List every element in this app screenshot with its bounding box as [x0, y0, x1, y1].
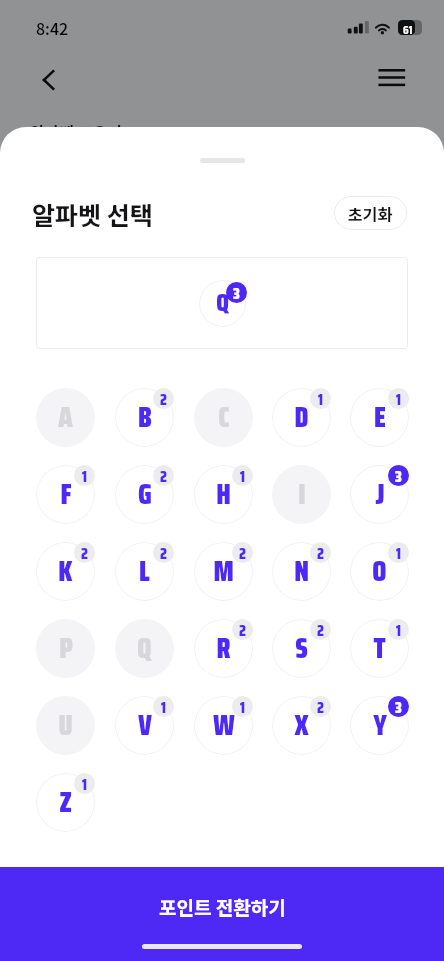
- button[interactable]: Q: [115, 619, 174, 678]
- staticText: 3: [395, 465, 402, 486]
- button[interactable]: C: [194, 388, 253, 447]
- staticText: B: [138, 395, 152, 439]
- other: Wi-Fi: [374, 19, 392, 34]
- staticText: D: [294, 395, 309, 439]
- button[interactable]: Z: [36, 773, 95, 832]
- staticText: 2: [81, 542, 88, 563]
- staticText: R: [216, 626, 231, 670]
- staticText: 2: [239, 542, 246, 563]
- staticText: A: [58, 395, 73, 439]
- button[interactable]: B: [115, 388, 174, 447]
- staticText: W: [213, 703, 235, 747]
- button[interactable]: U: [36, 696, 95, 755]
- button[interactable]: Back: [27, 58, 71, 102]
- staticText: 1: [396, 619, 401, 640]
- staticText: 포인트 전환하기: [159, 893, 286, 921]
- button[interactable]: J: [350, 465, 409, 524]
- staticText: 1: [82, 465, 87, 486]
- button[interactable]: P: [36, 619, 95, 678]
- staticText: V: [138, 703, 152, 747]
- button[interactable]: S: [272, 619, 331, 678]
- button[interactable]: Menu: [373, 60, 409, 96]
- button[interactable]: F: [36, 465, 95, 524]
- button[interactable]: L: [115, 542, 174, 601]
- staticText: 1: [82, 773, 87, 794]
- button[interactable]: K: [36, 542, 95, 601]
- staticText: 2: [160, 542, 167, 563]
- button[interactable]: I: [272, 465, 331, 524]
- staticText: L: [139, 549, 150, 593]
- button[interactable]: O: [350, 542, 409, 601]
- staticText: 1: [240, 696, 245, 717]
- staticText: 2: [317, 542, 324, 563]
- staticText: Q: [137, 626, 152, 670]
- button[interactable]: V: [115, 696, 174, 755]
- button[interactable]: 초기화: [334, 196, 407, 230]
- staticText: Z: [59, 780, 72, 824]
- staticText: H: [216, 472, 231, 516]
- staticText: 2: [160, 465, 167, 486]
- staticText: 8:42: [36, 16, 69, 39]
- staticText: M: [213, 549, 234, 593]
- staticText: 1: [161, 696, 166, 717]
- button[interactable]: 포인트 전환하기: [0, 867, 444, 961]
- staticText: T: [373, 626, 386, 670]
- button[interactable]: G: [115, 465, 174, 524]
- button[interactable]: Y: [350, 696, 409, 755]
- staticText: 1: [396, 542, 401, 563]
- button[interactable]: W: [194, 696, 253, 755]
- staticText: G: [138, 472, 152, 516]
- button[interactable]: R: [194, 619, 253, 678]
- staticText: Y: [373, 703, 387, 747]
- button[interactable]: T: [350, 619, 409, 678]
- staticText: C: [218, 395, 230, 439]
- staticText: 1: [318, 388, 323, 409]
- staticText: I: [298, 472, 306, 516]
- staticText: 3: [395, 696, 402, 717]
- staticText: N: [294, 549, 309, 593]
- button[interactable]: N: [272, 542, 331, 601]
- staticText: S: [295, 626, 308, 670]
- button[interactable]: X: [272, 696, 331, 755]
- staticText: U: [58, 703, 73, 747]
- staticText: P: [59, 626, 73, 670]
- button[interactable]: H: [194, 465, 253, 524]
- staticText: F: [60, 472, 72, 516]
- staticText: 알파벳 모으기: [30, 120, 122, 143]
- staticText: X: [294, 703, 309, 747]
- staticText: 61: [403, 20, 413, 35]
- button[interactable]: M: [194, 542, 253, 601]
- button[interactable]: Q: [199, 280, 246, 327]
- button[interactable]: E: [350, 388, 409, 447]
- staticText: Q: [216, 283, 229, 322]
- staticText: 3: [233, 282, 240, 303]
- staticText: J: [375, 472, 385, 516]
- staticText: 2: [239, 619, 246, 640]
- staticText: 알파벳 선택: [32, 196, 153, 230]
- staticText: 1: [396, 388, 401, 409]
- staticText: 1: [240, 465, 245, 486]
- staticText: K: [58, 549, 73, 593]
- staticText: 초기화: [348, 202, 393, 225]
- staticText: E: [374, 395, 386, 439]
- staticText: 2: [160, 388, 167, 409]
- staticText: O: [372, 549, 387, 593]
- other: Signal strength: [347, 20, 368, 34]
- staticText: 2: [317, 696, 324, 717]
- button[interactable]: D: [272, 388, 331, 447]
- button[interactable]: A: [36, 388, 95, 447]
- staticText: 2: [317, 619, 324, 640]
